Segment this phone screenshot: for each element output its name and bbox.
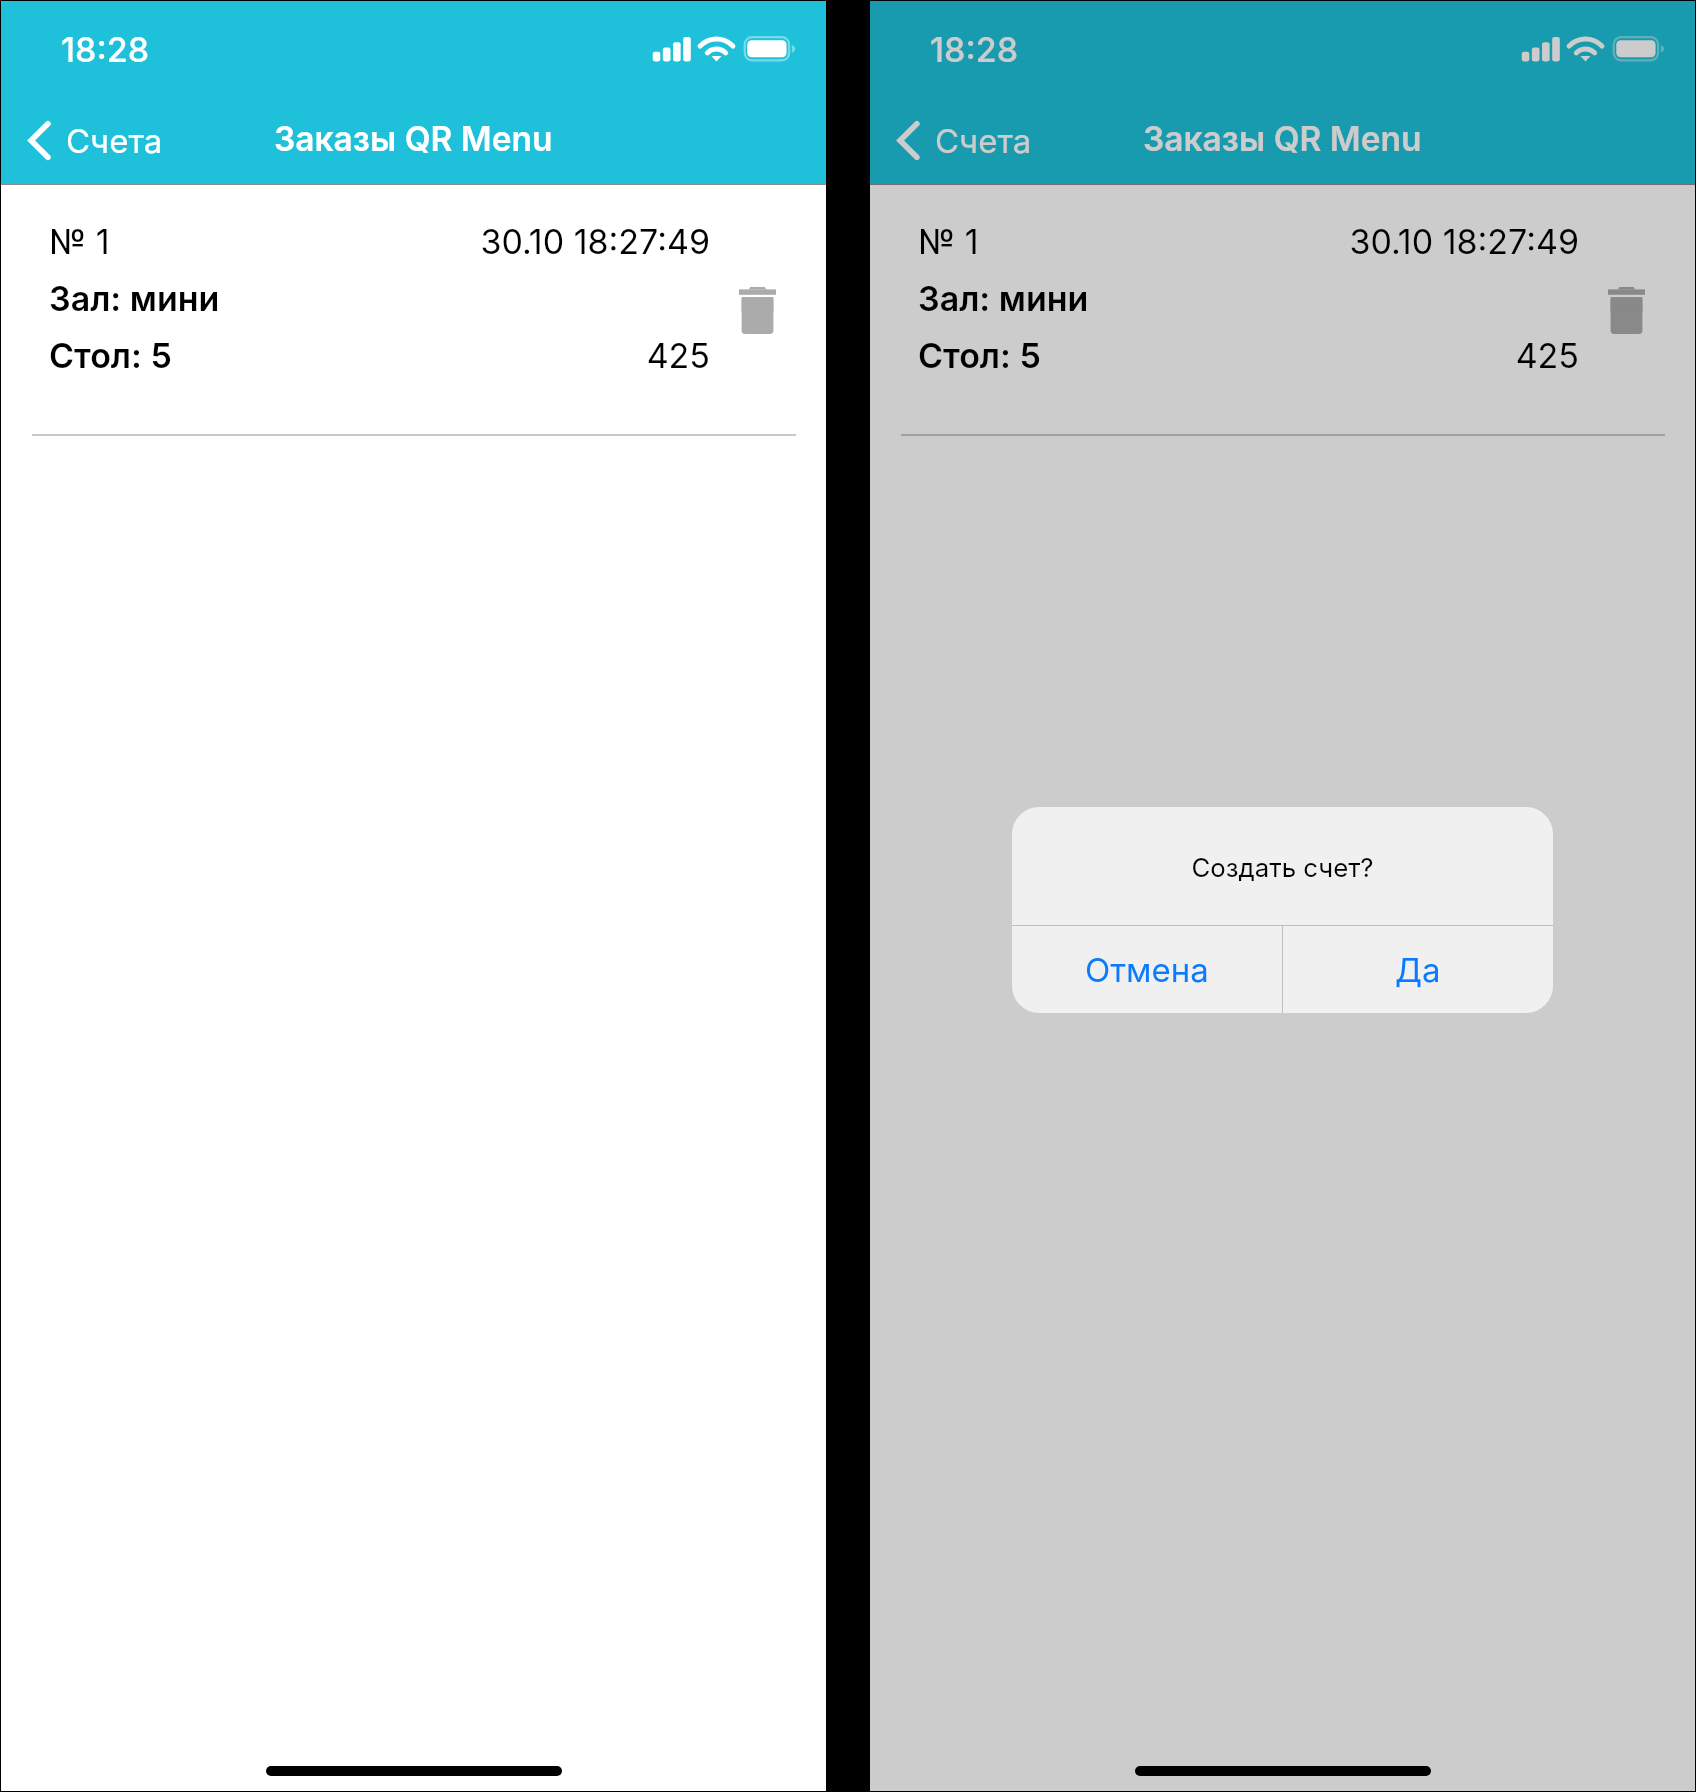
- button[interactable]: Счета: [884, 108, 1046, 172]
- staticText: Зал: мини: [49, 278, 220, 319]
- staticText: Заказы QR Menu: [1143, 119, 1422, 160]
- staticText: Стол: 5: [918, 335, 1041, 376]
- button[interactable]: Счета: [15, 108, 177, 172]
- button[interactable]: Delete: [734, 282, 780, 338]
- staticText: Заказы QR Menu: [274, 119, 553, 160]
- button[interactable]: Да: [1283, 926, 1553, 1013]
- staticText: 30.10 18:27:49: [49, 221, 710, 262]
- staticText: 18:28: [61, 29, 150, 70]
- staticText: Зал: мини: [918, 278, 1089, 319]
- staticText: 425: [49, 335, 710, 376]
- staticText: Создать счет?: [1012, 852, 1553, 883]
- button[interactable]: Отмена: [1012, 926, 1282, 1013]
- staticText: Счета: [66, 121, 163, 161]
- staticText: Счета: [935, 121, 1032, 161]
- staticText: № 1: [49, 221, 110, 262]
- staticText: 18:28: [930, 29, 1019, 70]
- staticText: 30.10 18:27:49: [918, 221, 1579, 262]
- button[interactable]: № 1: [0, 184, 827, 434]
- staticText: 425: [918, 335, 1579, 376]
- staticText: Отмена: [1085, 950, 1209, 990]
- staticText: Стол: 5: [49, 335, 172, 376]
- button[interactable]: Close dialog: [869, 0, 1696, 1792]
- button[interactable]: Delete: [1603, 282, 1649, 338]
- staticText: № 1: [918, 221, 979, 262]
- staticText: Да: [1395, 950, 1441, 990]
- button[interactable]: № 1: [869, 184, 1696, 434]
